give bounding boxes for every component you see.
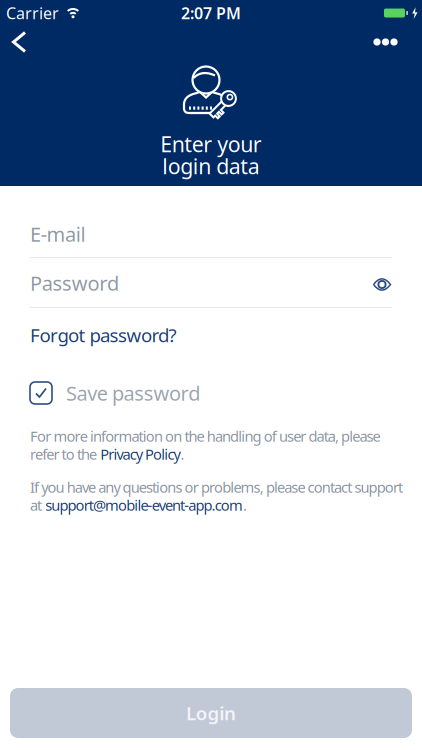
staticText: . — [180, 444, 184, 464]
button[interactable]: Privacy Policy — [100, 444, 180, 464]
staticText: Forgot password? — [30, 323, 176, 347]
staticText: For more information on the handling of … — [30, 426, 381, 446]
staticText: login data — [162, 152, 260, 180]
staticText: Enter your — [160, 130, 262, 158]
staticText: refer to the — [30, 444, 100, 464]
button[interactable]: Login — [10, 688, 412, 738]
button[interactable]: E-mail — [30, 224, 392, 258]
button[interactable]: Back — [6, 27, 36, 57]
button[interactable]: More options — [370, 27, 400, 57]
staticText: If you have any questions or problems, p… — [30, 477, 403, 497]
staticText: E-mail — [30, 221, 85, 247]
staticText: support@mobile-event-app.com — [45, 495, 243, 515]
staticText: Login — [186, 701, 236, 725]
button[interactable]: Password — [30, 273, 392, 308]
staticText: Privacy Policy — [100, 444, 180, 464]
button[interactable]: support@mobile-event-app.com — [45, 495, 243, 515]
staticText: Password — [30, 270, 119, 296]
staticText: Save password — [66, 380, 200, 406]
button[interactable]: Forgot password? — [30, 325, 176, 345]
staticText: Carrier — [6, 2, 59, 24]
staticText: . — [243, 495, 247, 515]
staticText: 2:07 PM — [181, 2, 241, 24]
staticText: at — [30, 495, 45, 515]
button[interactable]: Save password — [30, 382, 422, 404]
